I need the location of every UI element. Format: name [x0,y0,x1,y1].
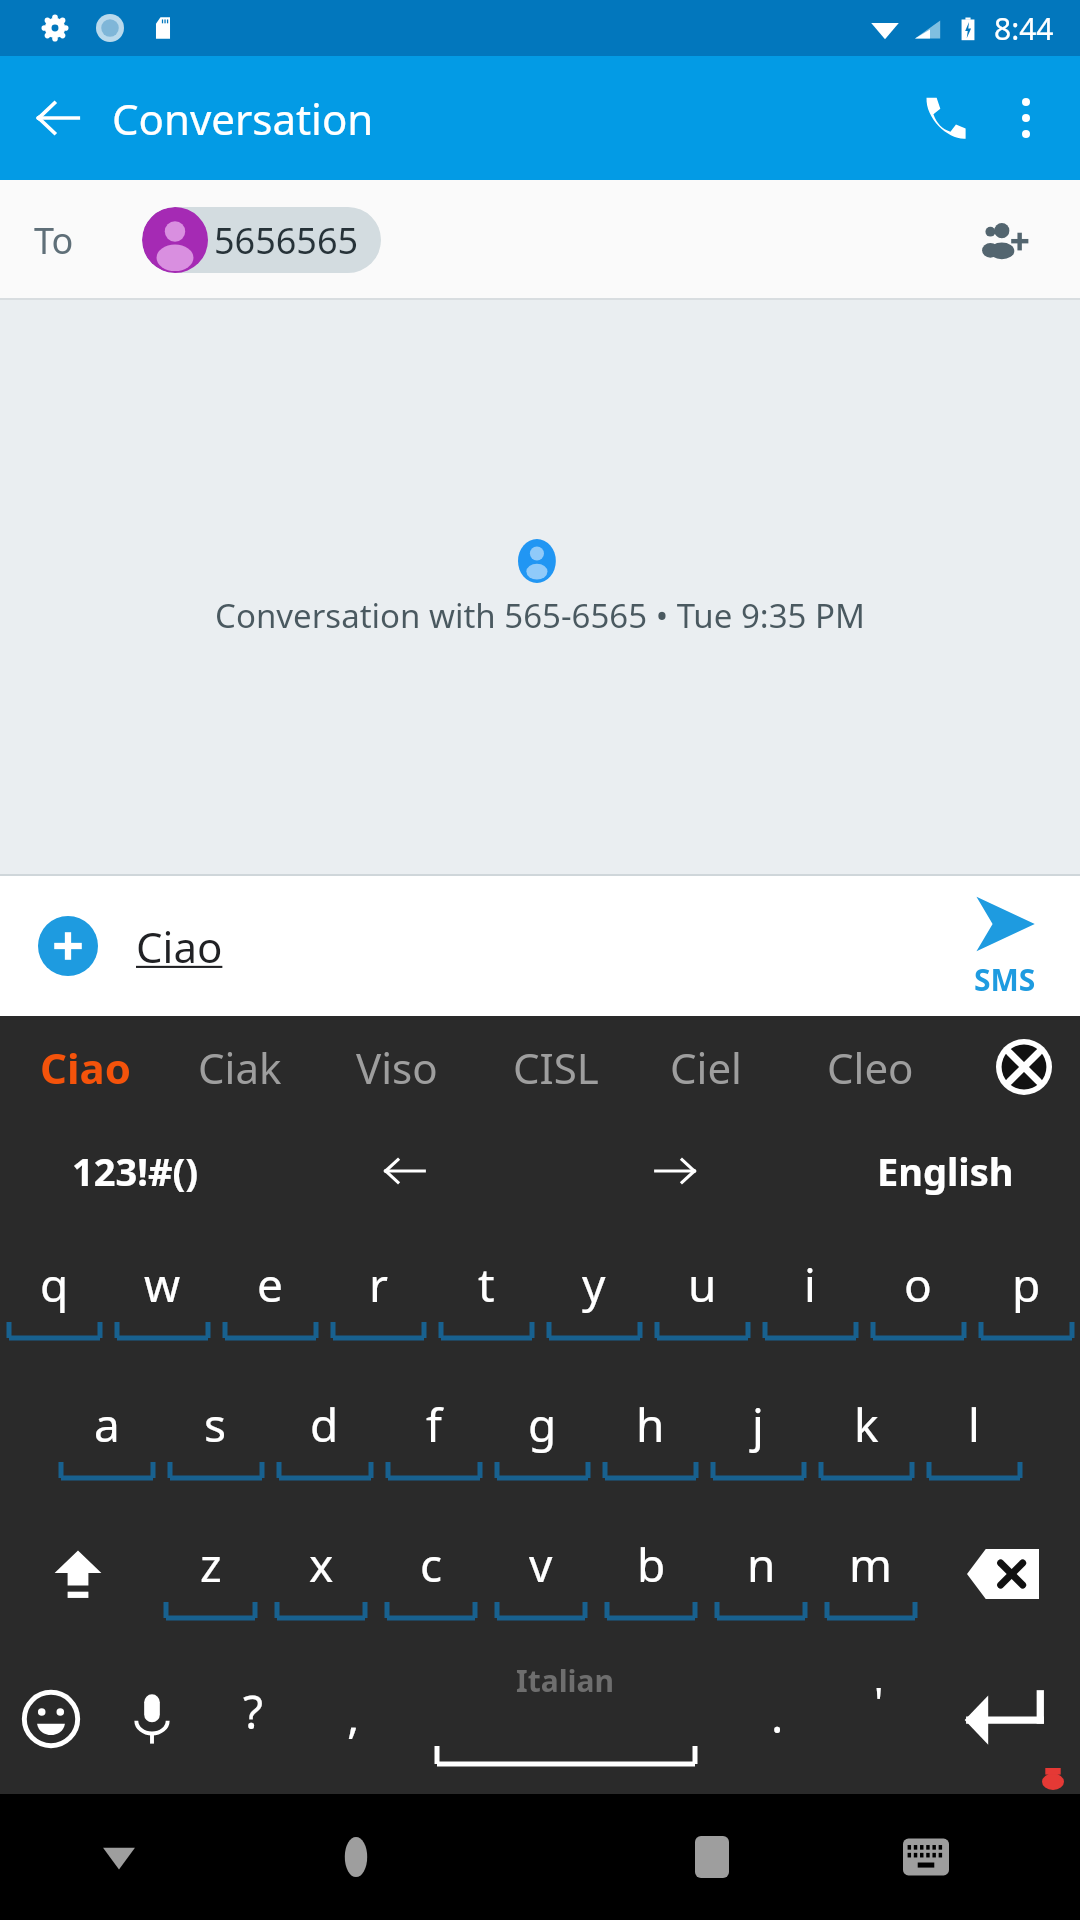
button[interactable]: , [303,1644,404,1794]
button[interactable]: Ciao [136,918,930,975]
button[interactable]: p [972,1224,1080,1364]
staticText: z [200,1533,222,1596]
staticText: 123!#() [72,1145,199,1197]
button[interactable]: Backspace [926,1504,1080,1644]
button[interactable]: Voice input [101,1644,202,1794]
button[interactable]: a [52,1364,161,1504]
button[interactable]: i [756,1224,864,1364]
button[interactable]: Hide keyboard [0,1794,237,1920]
staticText: x [309,1533,334,1596]
staticText: t [478,1253,495,1316]
button[interactable]: k [812,1364,920,1504]
button[interactable]: Add recipient [966,200,1046,280]
staticText: Ciel [670,1039,742,1096]
button[interactable]: CISL [513,1016,670,1118]
button[interactable]: Recent apps [605,1794,819,1920]
staticText: b [637,1533,666,1596]
staticText: s [204,1393,227,1456]
button[interactable]: Shift [0,1504,155,1644]
staticText: Ciak [198,1039,282,1096]
staticText: q [40,1253,69,1316]
button[interactable]: z [155,1504,266,1644]
staticText: 5656565 [214,216,359,265]
staticText: l [968,1393,980,1456]
button[interactable]: 5656565 [142,207,381,273]
button[interactable]: v [486,1504,596,1644]
staticText: Conversation with 565-6565 • Tue 9:35 PM [215,593,865,638]
button[interactable]: y [540,1224,648,1364]
button[interactable]: Ciao [40,1016,198,1118]
staticText: k [854,1393,879,1456]
button[interactable]: Ciak [198,1016,356,1118]
button[interactable]: d [270,1364,379,1504]
button[interactable]: Attach [30,908,106,984]
button[interactable]: w [108,1224,216,1364]
staticText: Cleo [827,1039,914,1096]
button[interactable]: Close suggestions [988,1031,1060,1103]
button[interactable]: Italian [404,1644,727,1794]
staticText: e [257,1253,283,1316]
staticText: Conversation [112,90,374,147]
button[interactable]: h [596,1364,704,1504]
staticText: ? [243,1680,263,1743]
staticText: ' [874,1673,884,1730]
button[interactable]: g [488,1364,596,1504]
staticText: p [1012,1253,1041,1316]
button[interactable]: n [706,1504,816,1644]
button[interactable]: Enter [929,1644,1080,1794]
staticText: u [688,1253,717,1316]
button[interactable]: e [216,1224,324,1364]
button[interactable]: Home [237,1794,474,1920]
staticText: h [636,1393,665,1456]
staticText: w [144,1253,181,1316]
button[interactable]: Move cursor right [540,1118,810,1224]
button[interactable]: c [376,1504,486,1644]
button[interactable]: l [920,1364,1028,1504]
button[interactable]: f [379,1364,488,1504]
staticText: v [529,1533,553,1596]
staticText: CISL [513,1039,599,1096]
staticText: English [877,1145,1014,1197]
button[interactable]: b [596,1504,706,1644]
button[interactable]: Ciel [670,1016,827,1118]
button[interactable]: Call [902,76,986,160]
staticText: 8:44 [994,8,1054,49]
staticText: Italian [516,1660,615,1701]
staticText: o [904,1253,932,1316]
staticText: a [94,1393,120,1456]
button[interactable]: Move cursor left [270,1118,540,1224]
button[interactable]: More options [986,78,1066,158]
button[interactable]: Emoji [0,1644,101,1794]
staticText: j [752,1393,764,1456]
staticText: d [310,1393,339,1456]
button[interactable]: t [432,1224,540,1364]
button[interactable]: s [161,1364,270,1504]
staticText: Viso [356,1039,438,1096]
button[interactable]: r [324,1224,432,1364]
button[interactable]: Cleo [827,1016,984,1118]
staticText: , [347,1684,360,1747]
staticText: m [849,1533,893,1596]
button[interactable]: m [816,1504,926,1644]
button[interactable]: x [266,1504,376,1644]
staticText: Ciao [136,918,223,975]
button[interactable]: o [864,1224,972,1364]
button[interactable]: 123!#() [0,1118,270,1224]
staticText: n [747,1533,776,1596]
button[interactable]: Send SMS [930,876,1080,1016]
staticText: g [528,1393,557,1456]
button[interactable]: . [727,1644,828,1794]
staticText: f [426,1393,442,1456]
button[interactable]: ' [828,1644,929,1794]
button[interactable]: English [810,1118,1080,1224]
staticText: i [804,1253,816,1316]
button[interactable]: u [648,1224,756,1364]
button[interactable]: Viso [356,1016,513,1118]
staticText: r [369,1253,388,1316]
button[interactable]: ? [202,1644,303,1794]
button[interactable]: Back [22,82,94,154]
staticText: . [771,1684,784,1747]
button[interactable]: Switch keyboard [819,1794,1033,1920]
button[interactable]: j [704,1364,812,1504]
button[interactable]: q [0,1224,108,1364]
